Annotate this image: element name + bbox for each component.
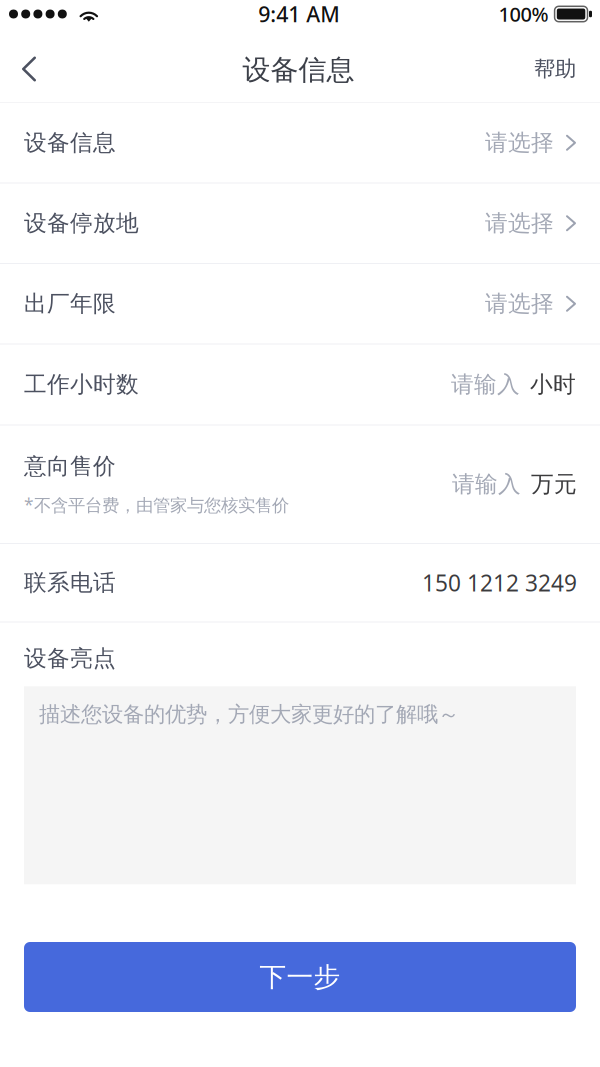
button[interactable]: 设备信息 xyxy=(0,103,600,182)
staticText: 请选择 xyxy=(485,290,554,318)
staticText: *不含平台费，由管家与您核实售价 xyxy=(24,493,289,516)
staticText: 设备亮点 xyxy=(24,644,116,672)
button[interactable]: 下一步 xyxy=(24,942,576,1012)
button[interactable]: 工作小时数 xyxy=(0,344,600,424)
staticText: 出厂年限 xyxy=(24,290,116,318)
staticText: 100% xyxy=(499,1,549,27)
button[interactable]: 帮助 xyxy=(508,28,600,102)
button[interactable]: 意向售价 xyxy=(0,425,600,543)
staticText: 联系电话 xyxy=(24,569,116,597)
staticText: 意向售价 xyxy=(24,452,116,480)
staticText: 设备信息 xyxy=(24,129,116,157)
staticText: 150 1212 3249 xyxy=(422,568,577,598)
staticText: 万元 xyxy=(531,470,577,498)
staticText: 小时 xyxy=(530,371,576,398)
button[interactable]: 描述您设备的优势，方便大家更好的了解哦～ xyxy=(24,686,576,884)
staticText: 请输入 xyxy=(452,470,521,498)
staticText: 9:41 AM xyxy=(258,0,340,28)
staticText: 帮助 xyxy=(534,56,576,82)
staticText: 请输入 xyxy=(451,371,520,398)
staticText: 设备信息 xyxy=(242,53,354,87)
staticText: 下一步 xyxy=(259,961,340,993)
button[interactable]: 联系电话 xyxy=(0,544,600,621)
button[interactable]: Back xyxy=(0,28,60,102)
staticText: 请选择 xyxy=(485,209,554,237)
button[interactable]: 设备停放地 xyxy=(0,183,600,263)
staticText: 设备停放地 xyxy=(24,209,139,237)
staticText: 工作小时数 xyxy=(24,371,139,398)
staticText: 描述您设备的优势，方便大家更好的了解哦～ xyxy=(39,701,459,727)
staticText: 请选择 xyxy=(485,129,554,157)
button[interactable]: 出厂年限 xyxy=(0,264,600,343)
